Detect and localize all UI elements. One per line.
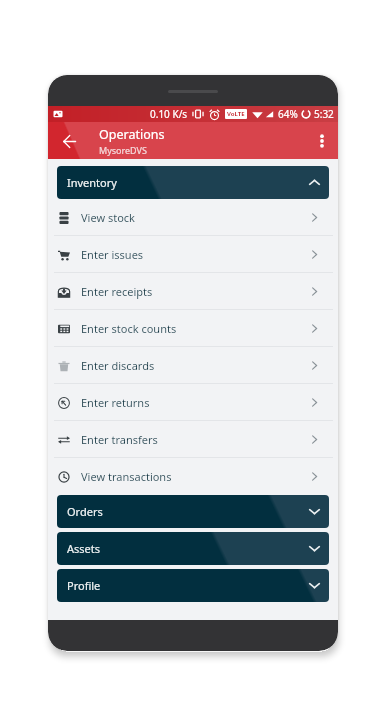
staticText: 5:32 [314, 107, 334, 121]
staticText: Enter transfers [81, 432, 158, 447]
button[interactable]: Enter returns [48, 384, 338, 421]
staticText: 64% [278, 107, 298, 121]
staticText: Enter receipts [81, 284, 153, 299]
button[interactable]: View stock [48, 199, 338, 236]
button[interactable]: View transactions [48, 458, 338, 495]
button[interactable]: Enter issues [48, 236, 338, 273]
button[interactable]: More options [306, 125, 338, 157]
button[interactable]: Back [48, 122, 86, 159]
staticText: Assets [67, 541, 101, 556]
staticText: Inventory [67, 175, 117, 190]
button[interactable]: Enter discards [48, 347, 338, 384]
staticText: Enter discards [81, 358, 155, 373]
button[interactable]: Assets [57, 532, 329, 565]
staticText: Enter issues [81, 247, 144, 262]
staticText: View stock [81, 210, 135, 225]
staticText: Enter stock counts [81, 321, 177, 336]
staticText: View transactions [81, 469, 172, 484]
button[interactable]: Enter receipts [48, 273, 338, 310]
button[interactable]: Enter transfers [48, 421, 338, 458]
staticText: MysoreDVS [99, 144, 147, 156]
button[interactable]: Profile [57, 569, 329, 602]
staticText: Orders [67, 504, 103, 519]
staticText: Enter returns [81, 395, 150, 410]
staticText: 0.10 K/s [150, 107, 188, 121]
staticText: Operations [99, 126, 165, 143]
button[interactable]: Inventory [57, 166, 329, 199]
staticText: Profile [67, 578, 101, 593]
button[interactable]: Enter stock counts [48, 310, 338, 347]
staticText: VoLTE [227, 110, 245, 118]
button[interactable]: Orders [57, 495, 329, 528]
